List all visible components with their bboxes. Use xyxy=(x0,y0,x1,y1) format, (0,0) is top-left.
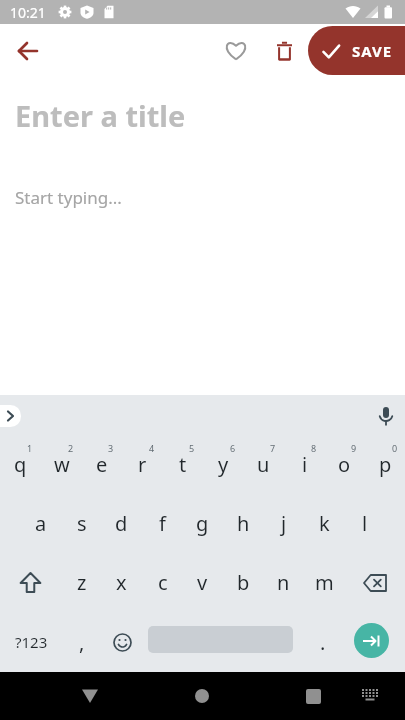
staticText: 6 xyxy=(230,442,236,454)
button[interactable]: q xyxy=(0,435,41,494)
button[interactable] xyxy=(102,612,142,672)
staticText: p xyxy=(379,451,392,478)
button[interactable]: , xyxy=(62,612,102,672)
button[interactable] xyxy=(187,681,217,711)
button[interactable]: w xyxy=(41,435,82,494)
button[interactable] xyxy=(356,681,384,709)
staticText: m xyxy=(315,569,334,596)
button[interactable] xyxy=(354,623,389,658)
button[interactable]: l xyxy=(344,494,385,553)
staticText: 1 xyxy=(27,442,33,454)
button[interactable] xyxy=(354,553,395,612)
staticText: ?123 xyxy=(15,632,48,652)
staticText: x xyxy=(116,569,127,596)
staticText: i xyxy=(302,451,308,478)
staticText: d xyxy=(115,510,128,537)
button[interactable] xyxy=(270,37,298,65)
staticText: c xyxy=(158,569,168,596)
staticText: s xyxy=(77,510,87,537)
staticText: u xyxy=(257,451,270,478)
staticText: Start typing... xyxy=(15,186,122,209)
button[interactable]: v xyxy=(182,553,223,612)
button[interactable]: x xyxy=(101,553,142,612)
button[interactable]: u xyxy=(243,435,284,494)
button[interactable] xyxy=(372,403,400,431)
button[interactable]: t xyxy=(162,435,203,494)
staticText: j xyxy=(281,510,287,537)
staticText: . xyxy=(320,629,326,656)
staticText: , xyxy=(79,629,85,656)
button[interactable]: r xyxy=(122,435,163,494)
button[interactable]: p xyxy=(365,435,405,494)
button[interactable]: . xyxy=(305,612,340,672)
staticText: l xyxy=(362,510,368,537)
button[interactable]: e xyxy=(81,435,122,494)
button[interactable]: ?123 xyxy=(8,612,54,672)
button[interactable]: z xyxy=(61,553,102,612)
button[interactable]: b xyxy=(223,553,264,612)
button[interactable]: o xyxy=(324,435,365,494)
staticText: 3 xyxy=(108,442,114,454)
button[interactable] xyxy=(14,37,42,65)
button[interactable]: n xyxy=(263,553,304,612)
staticText: h xyxy=(237,510,250,537)
staticText: SAVE xyxy=(352,41,393,61)
staticText: 9 xyxy=(351,442,357,454)
staticText: w xyxy=(54,451,70,478)
staticText: k xyxy=(319,510,330,537)
button[interactable]: h xyxy=(223,494,264,553)
staticText: r xyxy=(138,451,147,478)
button[interactable]: i xyxy=(284,435,325,494)
button[interactable]: y xyxy=(203,435,244,494)
button[interactable]: j xyxy=(263,494,304,553)
button[interactable] xyxy=(298,681,328,711)
button[interactable]: c xyxy=(142,553,183,612)
button[interactable] xyxy=(0,405,21,427)
button[interactable]: a xyxy=(20,494,61,553)
button[interactable]: f xyxy=(142,494,183,553)
staticText: Enter a title xyxy=(15,96,186,135)
button[interactable]: g xyxy=(182,494,223,553)
button[interactable]: m xyxy=(304,553,345,612)
staticText: y xyxy=(218,451,229,478)
staticText: z xyxy=(77,569,87,596)
button[interactable] xyxy=(10,553,51,612)
staticText: g xyxy=(196,510,209,537)
staticText: 4 xyxy=(149,442,155,454)
staticText: 7 xyxy=(270,442,276,454)
staticText: a xyxy=(35,510,47,537)
button[interactable]: SAVE xyxy=(308,26,405,75)
button[interactable] xyxy=(75,681,105,711)
button[interactable]: k xyxy=(304,494,345,553)
staticText: q xyxy=(14,451,27,478)
staticText: e xyxy=(96,451,108,478)
staticText: o xyxy=(338,451,351,478)
staticText: 5 xyxy=(189,442,195,454)
staticText: b xyxy=(237,569,250,596)
staticText: 8 xyxy=(311,442,317,454)
staticText: 10:21 xyxy=(10,3,46,22)
staticText: 2 xyxy=(68,442,74,454)
button[interactable]: s xyxy=(61,494,102,553)
staticText: v xyxy=(197,569,208,596)
button[interactable]: d xyxy=(101,494,142,553)
button[interactable] xyxy=(222,37,250,65)
staticText: n xyxy=(277,569,290,596)
staticText: f xyxy=(159,510,166,537)
staticText: t xyxy=(179,451,187,478)
staticText: 0 xyxy=(392,442,398,454)
